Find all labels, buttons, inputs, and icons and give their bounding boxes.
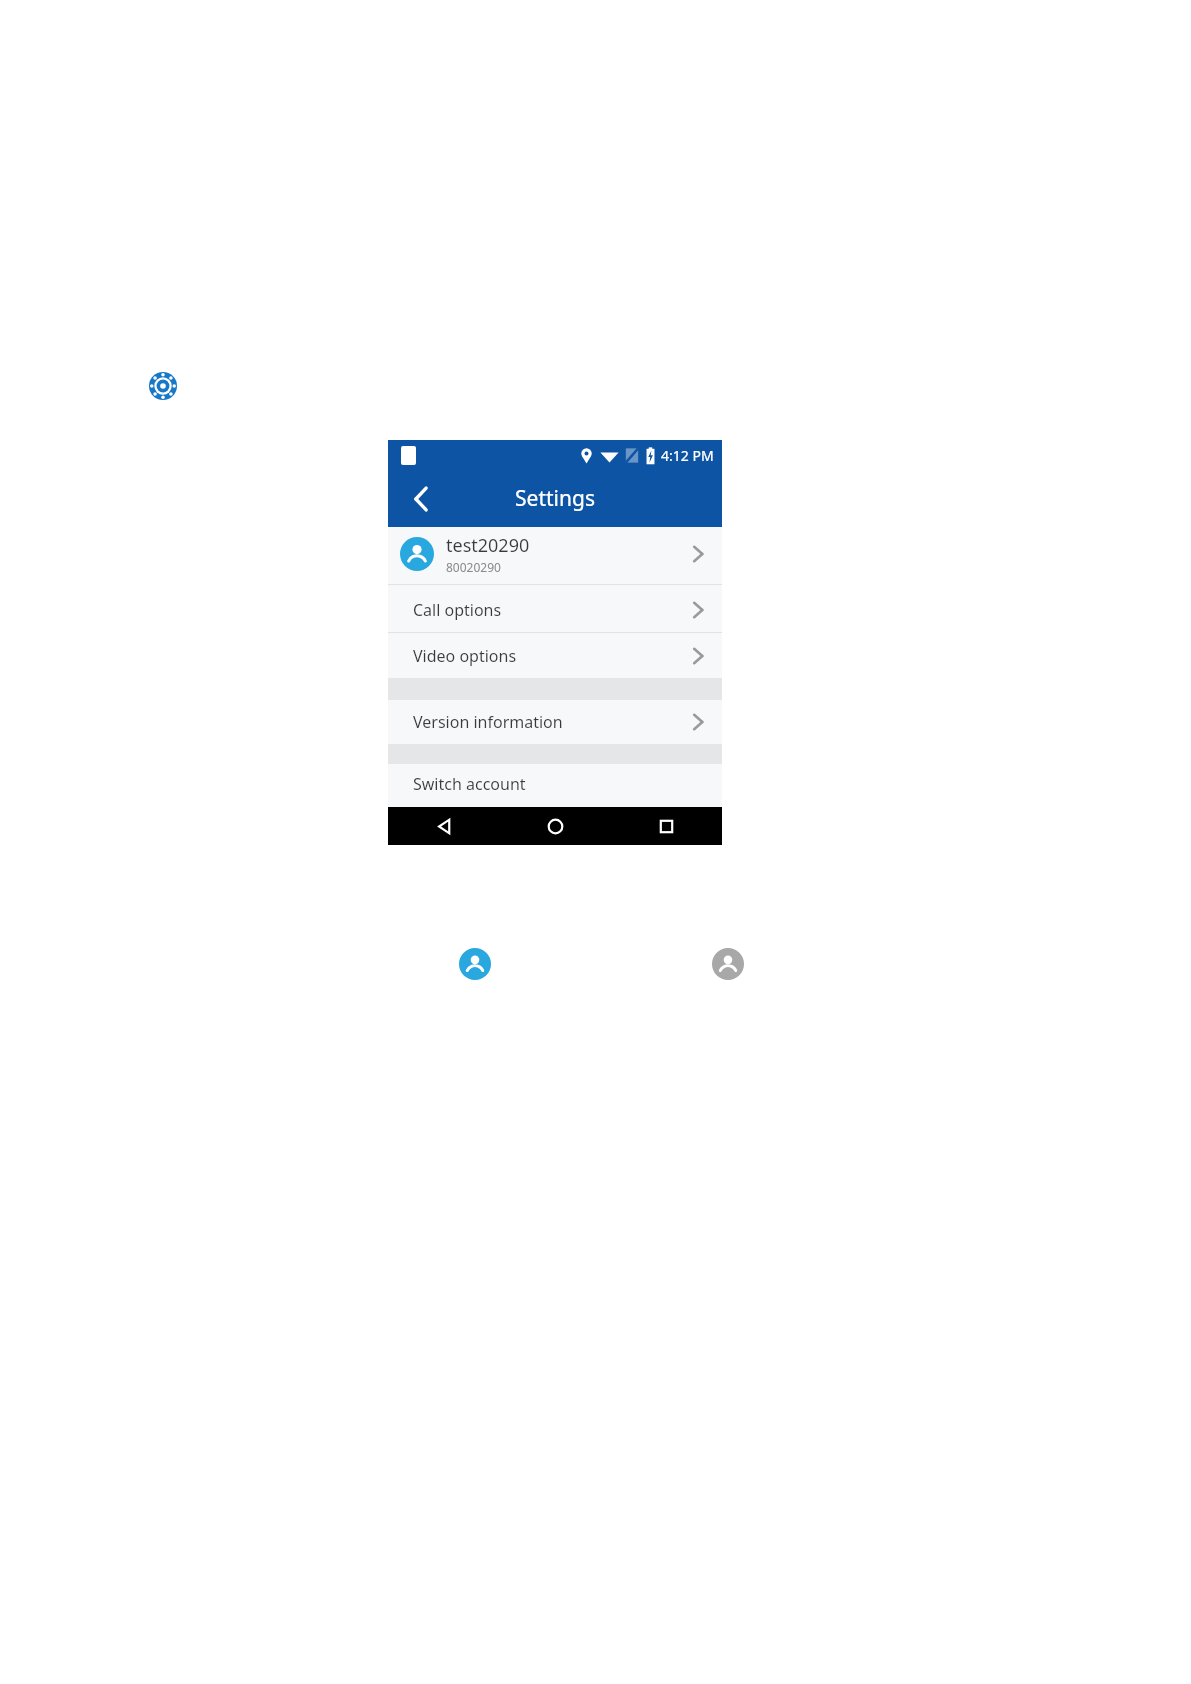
staticText: Version information	[413, 711, 692, 733]
staticText: test20290	[446, 533, 530, 558]
button[interactable]: test20290	[388, 527, 722, 580]
button[interactable]: Settings	[149, 372, 177, 400]
button[interactable]: Version information	[388, 700, 722, 744]
button[interactable]: Call options	[388, 588, 722, 632]
staticText: 4:12 PM	[661, 446, 714, 465]
button[interactable]: Back	[388, 807, 500, 845]
button[interactable]: Switch account	[388, 764, 722, 804]
button[interactable]: Recent apps	[611, 807, 722, 845]
staticText: 80020290	[446, 559, 501, 575]
button[interactable]: Home	[500, 807, 611, 845]
staticText: Settings	[515, 484, 595, 513]
staticText: Video options	[413, 645, 692, 667]
button[interactable]: Video options	[388, 633, 722, 678]
button[interactable]: Account inactive	[712, 948, 744, 980]
button[interactable]: Back	[404, 482, 438, 516]
button[interactable]: Account active	[459, 948, 491, 980]
staticText: Call options	[413, 599, 692, 621]
staticText: Switch account	[413, 773, 704, 795]
